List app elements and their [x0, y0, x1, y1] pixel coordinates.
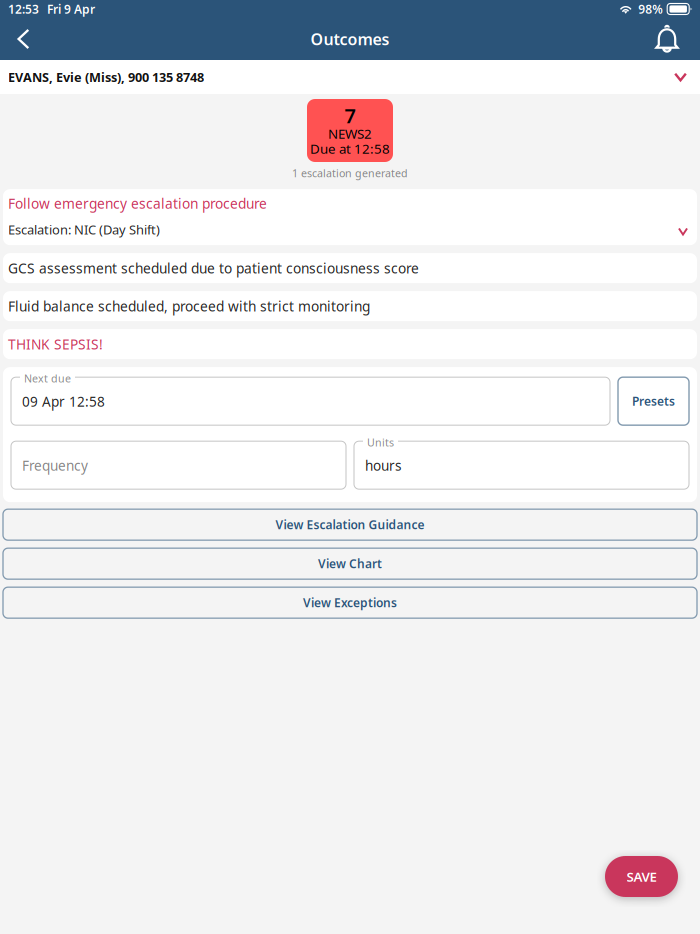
- staticText: 09 Apr 12:58: [22, 392, 105, 411]
- button[interactable]: EVANS, Evie (Miss), 900 135 8748: [0, 60, 700, 94]
- staticText: Fluid balance scheduled, proceed with st…: [8, 297, 370, 315]
- staticText: 1 escalation generated: [292, 166, 408, 180]
- staticText: EVANS, Evie (Miss), 900 135 8748: [8, 68, 204, 86]
- staticText: Next due: [24, 371, 71, 385]
- staticText: Presets: [632, 393, 675, 409]
- staticText: Fri 9 Apr: [47, 1, 95, 17]
- staticText: Follow emergency escalation procedure: [8, 194, 267, 213]
- button[interactable]: View Escalation Guidance: [3, 509, 697, 540]
- staticText: NEWS2: [328, 125, 372, 142]
- button[interactable]: Notifications: [642, 18, 700, 60]
- staticText: 7: [344, 102, 355, 129]
- staticText: View Chart: [318, 556, 382, 572]
- button[interactable]: View Chart: [3, 548, 697, 579]
- staticText: GCS assessment scheduled due to patient …: [8, 259, 419, 277]
- staticText: SAVE: [626, 868, 656, 885]
- staticText: THINK SEPSIS!: [8, 335, 103, 353]
- button[interactable]: GCS assessment scheduled due to patient …: [3, 253, 697, 283]
- staticText: 98%: [638, 1, 663, 17]
- staticText: Outcomes: [310, 28, 389, 50]
- staticText: hours: [365, 456, 402, 475]
- button[interactable]: Presets: [618, 377, 689, 425]
- button[interactable]: Fluid balance scheduled, proceed with st…: [3, 291, 697, 321]
- button[interactable]: View Exceptions: [3, 587, 697, 618]
- staticText: 12:53: [8, 1, 39, 17]
- staticText: View Exceptions: [303, 595, 397, 611]
- button[interactable]: THINK SEPSIS!: [3, 329, 697, 359]
- staticText: Frequency: [22, 456, 88, 475]
- staticText: Escalation: NIC (Day Shift): [8, 221, 160, 238]
- button[interactable]: SAVE: [605, 856, 678, 897]
- button[interactable]: Back: [0, 18, 44, 60]
- staticText: Units: [367, 435, 394, 449]
- staticText: Due at 12:58: [310, 140, 390, 157]
- button[interactable]: Follow emergency escalation procedure: [3, 189, 697, 245]
- staticText: View Escalation Guidance: [275, 517, 424, 533]
